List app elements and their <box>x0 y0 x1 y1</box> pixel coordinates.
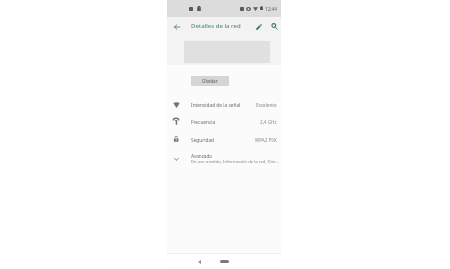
staticText: Frecuencia <box>191 119 216 126</box>
button[interactable]: Search <box>268 20 281 33</box>
staticText: Intensidad de la señal <box>191 102 241 109</box>
button[interactable]: Seguridad <box>167 131 281 148</box>
staticText: 12:44 <box>265 6 277 12</box>
staticText: Detalles de la red <box>191 22 241 30</box>
button[interactable]: Avanzado <box>167 147 281 169</box>
staticText: Olvidar <box>202 78 218 84</box>
button[interactable]: Olvidar <box>191 76 229 86</box>
staticText: Avanzado <box>191 153 213 159</box>
button[interactable]: Intensidad de la señal <box>167 96 281 113</box>
staticText: De uso medido, Información de la red, Di… <box>191 159 280 165</box>
button[interactable]: Home <box>220 260 229 263</box>
staticText: Seguridad <box>191 137 215 144</box>
staticText: WPA2 PSK <box>255 137 277 143</box>
button[interactable]: Back <box>170 20 183 33</box>
button[interactable]: Back <box>195 257 204 266</box>
button[interactable]: Edit <box>253 20 266 33</box>
button[interactable]: Frecuencia <box>167 113 281 130</box>
staticText: Excelente <box>256 102 277 108</box>
staticText: 2,4 GHz <box>260 119 277 125</box>
